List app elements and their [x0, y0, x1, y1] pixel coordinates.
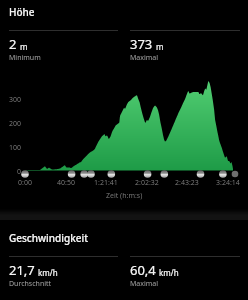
staticText: 200: [9, 119, 22, 129]
staticText: 0:00: [18, 178, 32, 188]
staticText: Höhe: [9, 5, 35, 19]
staticText: 100: [9, 143, 22, 153]
staticText: km/h: [38, 267, 58, 278]
staticText: Minimum: [9, 53, 41, 63]
staticText: km/h: [159, 267, 179, 278]
staticText: 373: [130, 35, 153, 53]
staticText: Durchschnitt: [9, 279, 52, 289]
staticText: m: [20, 41, 28, 52]
button[interactable]: Höhe: [0, 0, 248, 63]
staticText: 21,7: [9, 261, 35, 279]
staticText: 2: [9, 35, 17, 53]
staticText: 3:24:14: [216, 178, 240, 188]
staticText: 1:21:41: [94, 178, 118, 188]
staticText: 40:50: [57, 178, 75, 188]
staticText: 2:02:32: [135, 178, 159, 188]
staticText: 0: [17, 167, 22, 177]
button[interactable]: Geschwindigkeit: [0, 226, 248, 289]
staticText: 2:43:23: [175, 178, 199, 188]
staticText: Geschwindigkeit: [9, 231, 89, 245]
staticText: 300: [9, 95, 22, 105]
staticText: Maximal: [130, 279, 159, 289]
staticText: m: [156, 41, 164, 52]
staticText: Maximal: [130, 53, 159, 63]
staticText: Zeit (h:m:s): [106, 191, 143, 201]
staticText: 60,4: [130, 261, 156, 279]
